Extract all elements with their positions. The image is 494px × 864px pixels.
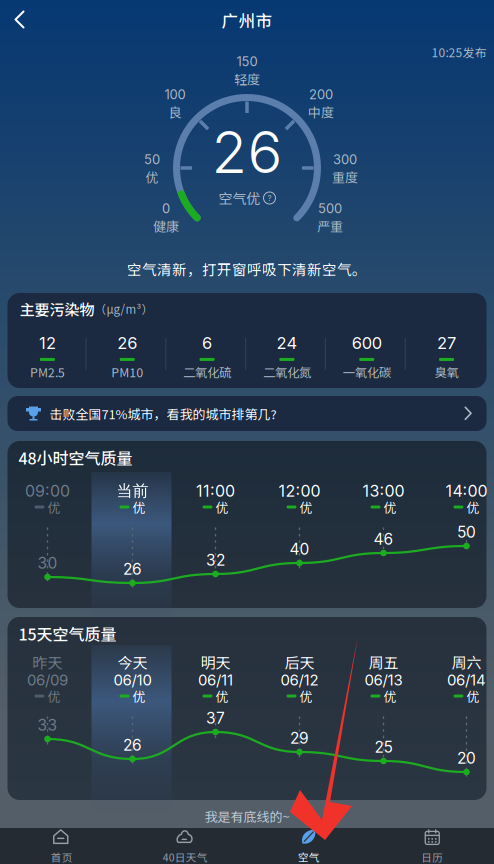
- staticText: 06/14: [447, 671, 486, 689]
- staticText: 击败全国71%城市，看我的城市排第几?: [49, 404, 276, 423]
- staticText: 重度: [332, 167, 358, 186]
- button[interactable]: 40日天气: [123, 828, 247, 864]
- staticText: 优: [466, 687, 479, 705]
- staticText: 二氧化硫: [183, 363, 231, 381]
- button[interactable]: 日历: [370, 828, 494, 864]
- button[interactable]: 击败全国71%城市，看我的城市排第几?: [7, 396, 486, 431]
- staticText: 26: [123, 736, 142, 754]
- staticText: 优: [132, 687, 145, 705]
- staticText: 昨天: [32, 651, 62, 673]
- staticText: 33: [37, 716, 57, 734]
- staticText: 32: [206, 551, 225, 569]
- staticText: 首页: [51, 849, 73, 864]
- staticText: 轻度: [234, 69, 260, 88]
- staticText: 06/10: [113, 671, 151, 689]
- staticText: ?: [267, 193, 271, 203]
- staticText: （μg/m³）: [94, 300, 153, 317]
- staticText: 良: [168, 102, 181, 121]
- staticText: 600: [352, 333, 382, 353]
- staticText: 优: [383, 687, 396, 705]
- staticText: 优: [47, 687, 60, 705]
- staticText: 09:00: [25, 481, 70, 501]
- staticText: 40: [289, 540, 309, 558]
- staticText: 48小时空气质量: [18, 446, 132, 469]
- staticText: 主要污染物: [19, 298, 94, 320]
- staticText: 优: [299, 498, 312, 516]
- staticText: 06/09: [27, 671, 68, 689]
- staticText: 空气优: [218, 188, 260, 208]
- staticText: 0: [162, 201, 170, 216]
- staticText: 优: [466, 498, 479, 516]
- staticText: 优: [132, 498, 145, 516]
- staticText: 空气清新，打开窗呼吸下清新空气。: [127, 258, 367, 279]
- staticText: 今天: [117, 651, 147, 673]
- staticText: 13:00: [362, 481, 404, 501]
- staticText: 27: [437, 333, 456, 353]
- staticText: 明天: [200, 651, 230, 673]
- staticText: 37: [206, 709, 225, 727]
- button[interactable]: Back: [0, 0, 39, 40]
- staticText: 46: [373, 530, 393, 548]
- staticText: 后天: [284, 651, 314, 673]
- staticText: 二氧化氮: [263, 363, 311, 381]
- staticText: 严重: [317, 216, 343, 235]
- staticText: 30: [37, 554, 57, 572]
- staticText: 50: [144, 152, 160, 167]
- staticText: 14:00: [445, 481, 487, 501]
- staticText: 06/11: [198, 671, 233, 689]
- staticText: 优: [47, 498, 60, 516]
- staticText: 25: [374, 738, 392, 756]
- staticText: 空气: [298, 849, 320, 864]
- staticText: 26: [117, 333, 137, 353]
- staticText: PM2.5: [30, 363, 65, 381]
- staticText: 500: [318, 201, 342, 216]
- staticText: PM10: [111, 363, 143, 381]
- staticText: 广州市: [221, 8, 272, 32]
- staticText: 06/12: [280, 671, 318, 689]
- staticText: 200: [309, 87, 333, 102]
- button[interactable]: 首页: [0, 828, 123, 864]
- staticText: 日历: [421, 849, 443, 864]
- staticText: 29: [290, 729, 309, 747]
- staticText: 优: [215, 687, 228, 705]
- staticText: 50: [457, 523, 476, 541]
- staticText: 06/13: [364, 671, 402, 689]
- staticText: 健康: [153, 216, 179, 235]
- staticText: 20: [457, 749, 476, 767]
- staticText: 10:25发布: [431, 43, 486, 61]
- staticText: 优: [299, 687, 312, 705]
- staticText: 100: [164, 87, 185, 102]
- staticText: 优: [383, 498, 396, 516]
- staticText: 我是有底线的~: [204, 807, 289, 825]
- staticText: 40日天气: [163, 849, 208, 864]
- staticText: 周六: [451, 651, 481, 673]
- staticText: 26: [123, 560, 142, 578]
- button[interactable]: 空气: [247, 828, 370, 864]
- staticText: 当前: [116, 481, 148, 501]
- staticText: 300: [333, 152, 357, 167]
- staticText: 中度: [308, 102, 334, 121]
- staticText: 优: [145, 167, 158, 186]
- staticText: 一氧化碳: [343, 363, 391, 381]
- staticText: 24: [276, 333, 297, 353]
- staticText: 12:00: [278, 481, 320, 501]
- staticText: 15天空气质量: [18, 622, 116, 645]
- staticText: 6: [202, 333, 212, 353]
- staticText: 周五: [368, 651, 398, 673]
- staticText: 优: [215, 498, 228, 516]
- staticText: 150: [236, 54, 257, 69]
- staticText: 11:00: [196, 481, 235, 501]
- staticText: 12: [39, 333, 56, 353]
- staticText: 臭氧: [435, 363, 459, 381]
- staticText: 26: [211, 117, 282, 187]
